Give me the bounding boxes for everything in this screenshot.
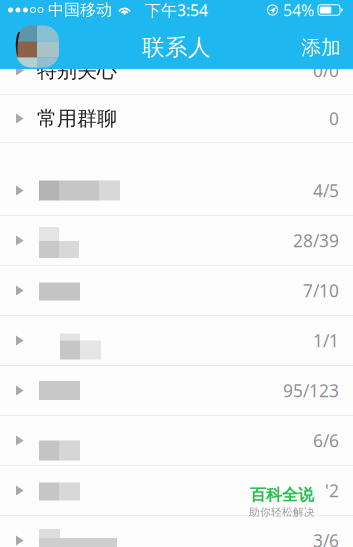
staticText: 1/1 [313,329,339,352]
staticText: 28/39 [293,229,339,252]
button[interactable]: 特别关心 [0,47,353,94]
staticText: 3/6 [313,529,339,547]
staticText: 下午3:54 [145,0,208,21]
staticText: 百科全说 [250,485,314,505]
button[interactable]: 添加 [301,22,353,67]
staticText: 特别关心 [37,58,117,83]
staticText: 常用群聊 [37,106,117,131]
button[interactable]: 28/39 [0,216,353,265]
staticText: 中国移动 [48,0,112,20]
staticText: 联系人 [142,34,211,61]
staticText: 添加 [301,35,341,60]
staticText: 助你轻松解决 [249,506,315,519]
button[interactable]: 常用群聊 [0,95,353,142]
button[interactable]: 6/6 [0,416,353,465]
staticText: '2 [325,479,339,502]
button[interactable]: 3/6 [0,516,353,547]
staticText: 0/0 [313,59,339,82]
button[interactable]: 95/123 [0,366,353,415]
button[interactable]: 1/1 [0,316,353,365]
button[interactable]: '2 [0,466,353,515]
button[interactable]: 7/10 [0,266,353,315]
staticText: 4/5 [313,179,339,202]
staticText: 7/10 [303,279,339,302]
button[interactable]: Profile [0,23,59,65]
staticText: 6/6 [313,429,339,452]
staticText: 54% [283,0,314,21]
button[interactable]: 4/5 [0,166,353,215]
staticText: 0 [329,107,339,130]
staticText: 95/123 [283,379,339,402]
